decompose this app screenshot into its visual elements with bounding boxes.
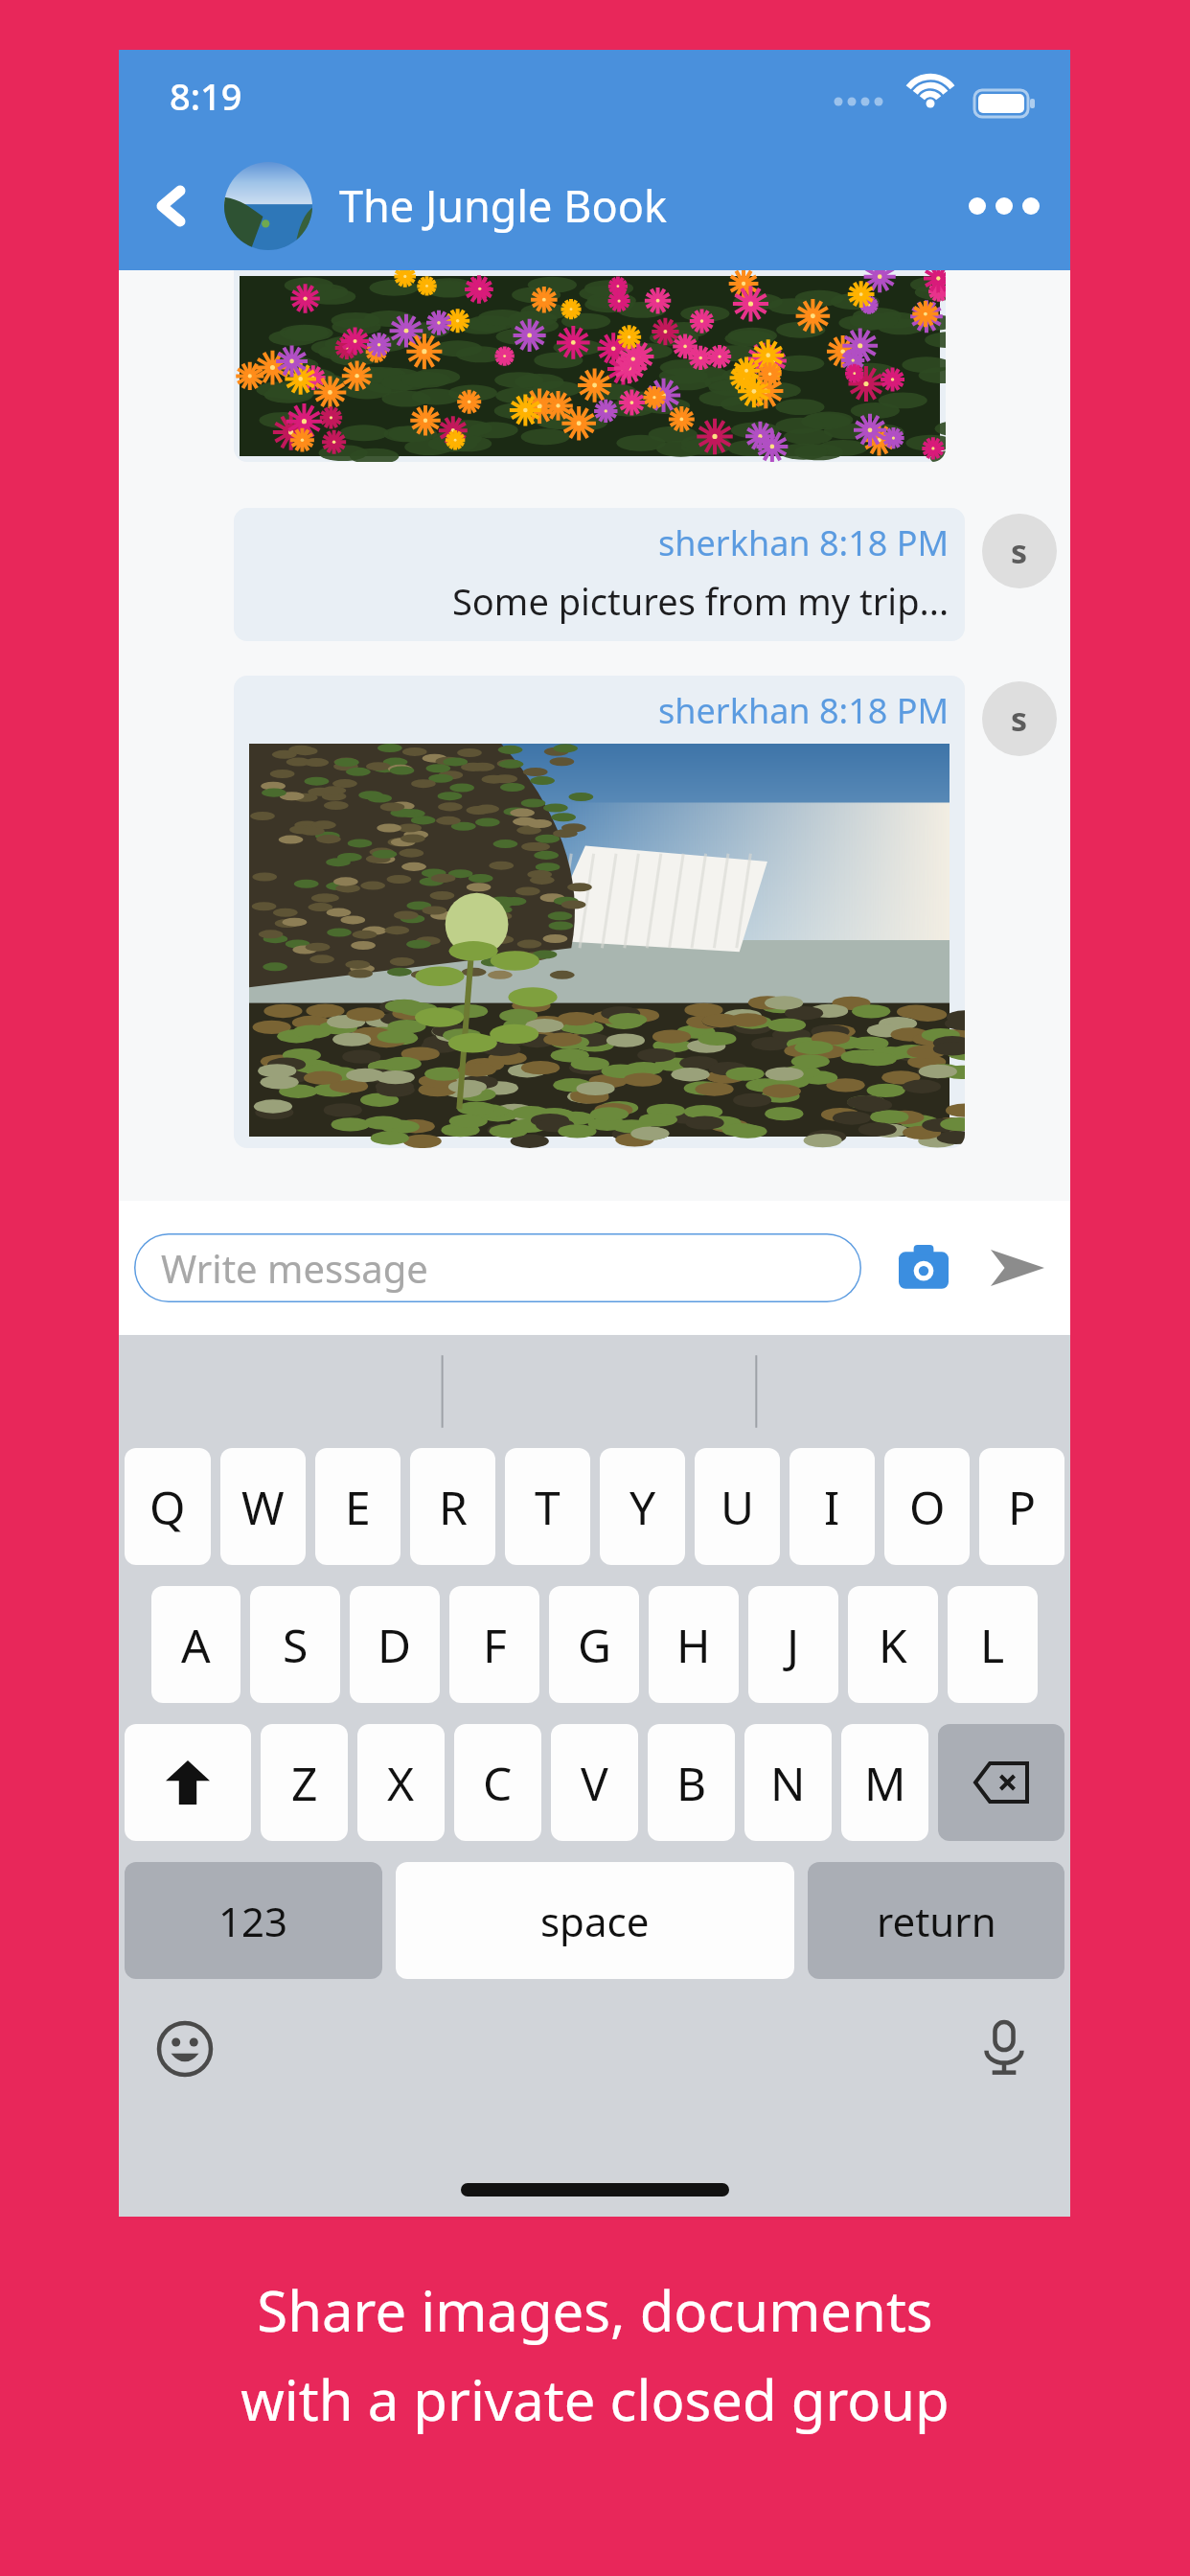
staticText: J [787, 1614, 800, 1676]
staticText: C [483, 1752, 513, 1814]
staticText: Q [149, 1476, 186, 1538]
staticText: with a private closed group [240, 2361, 950, 2437]
button[interactable]: C [454, 1724, 541, 1841]
button[interactable]: O [884, 1448, 970, 1565]
button[interactable]: F [449, 1586, 539, 1703]
staticText: P [1008, 1476, 1037, 1538]
staticText: V [581, 1752, 608, 1814]
staticText: The Jungle Book [339, 176, 667, 235]
staticText: X [387, 1752, 415, 1814]
button[interactable]: U [695, 1448, 780, 1565]
button[interactable]: return [808, 1862, 1064, 1979]
staticText: A [181, 1614, 211, 1676]
staticText: I [824, 1476, 840, 1538]
button[interactable]: sherkhan 8:18 PM [234, 676, 965, 1148]
button[interactable]: R [410, 1448, 495, 1565]
staticText: E [345, 1476, 371, 1538]
staticText: T [535, 1476, 561, 1538]
button[interactable]: Q [125, 1448, 211, 1565]
staticText: return [877, 1894, 996, 1948]
staticText: space [540, 1894, 650, 1948]
button[interactable]: M [841, 1724, 928, 1841]
button[interactable]: E [315, 1448, 400, 1565]
button[interactable]: H [649, 1586, 739, 1703]
staticText: M [864, 1752, 906, 1814]
button[interactable]: Back [119, 141, 224, 270]
staticText: sherkhan 8:18 PM [658, 687, 950, 734]
staticText: F [483, 1614, 507, 1676]
button[interactable]: Backspace [938, 1724, 1064, 1841]
button[interactable]: D [350, 1586, 440, 1703]
button[interactable]: sherkhan 8:18 PM [234, 508, 965, 641]
staticText: Z [291, 1752, 318, 1814]
staticText: sherkhan 8:18 PM [658, 519, 950, 566]
staticText: R [439, 1476, 468, 1538]
staticText: Share images, documents [257, 2272, 933, 2348]
button[interactable]: J [748, 1586, 838, 1703]
button[interactable]: More options [951, 153, 1057, 259]
button[interactable]: B [648, 1724, 735, 1841]
button[interactable]: s [982, 681, 1057, 756]
staticText: W [241, 1476, 285, 1538]
staticText: K [879, 1614, 907, 1676]
staticText: S [283, 1614, 309, 1676]
staticText: s [1011, 697, 1028, 741]
button[interactable]: L [948, 1586, 1038, 1703]
staticText: Some pictures from my trip... [452, 576, 950, 626]
button[interactable]: Z [261, 1724, 348, 1841]
staticText: B [676, 1752, 707, 1814]
button[interactable]: I [790, 1448, 875, 1565]
button[interactable]: Emoji [144, 2008, 226, 2090]
staticText: G [578, 1614, 611, 1676]
button[interactable]: T [505, 1448, 590, 1565]
button[interactable]: Y [600, 1448, 685, 1565]
button[interactable]: S [250, 1586, 340, 1703]
button[interactable]: Camera [886, 1230, 961, 1305]
staticText: s [1011, 529, 1028, 573]
button[interactable]: X [357, 1724, 445, 1841]
button[interactable]: Voice input [963, 2008, 1045, 2090]
button[interactable]: P [979, 1448, 1064, 1565]
staticText: O [909, 1476, 946, 1538]
staticText: 123 [218, 1894, 288, 1948]
staticText: 8:19 [170, 71, 242, 121]
button[interactable]: W [220, 1448, 306, 1565]
button[interactable]: K [848, 1586, 938, 1703]
button[interactable]: space [396, 1862, 794, 1979]
button[interactable]: V [551, 1724, 638, 1841]
button[interactable]: A [151, 1586, 240, 1703]
button[interactable]: N [744, 1724, 832, 1841]
button[interactable]: G [549, 1586, 639, 1703]
staticText: U [721, 1476, 755, 1538]
button[interactable]: 123 [125, 1862, 382, 1979]
button[interactable]: Shift [125, 1724, 251, 1841]
staticText: Y [629, 1476, 656, 1538]
staticText: D [378, 1614, 412, 1676]
button[interactable] [240, 276, 940, 456]
button[interactable]: Write message [134, 1233, 861, 1302]
button[interactable]: s [982, 514, 1057, 588]
staticText: L [980, 1614, 1005, 1676]
button[interactable]: Send [980, 1230, 1055, 1305]
staticText: Write message [161, 1242, 428, 1294]
staticText: H [676, 1614, 711, 1676]
staticText: N [770, 1752, 806, 1814]
